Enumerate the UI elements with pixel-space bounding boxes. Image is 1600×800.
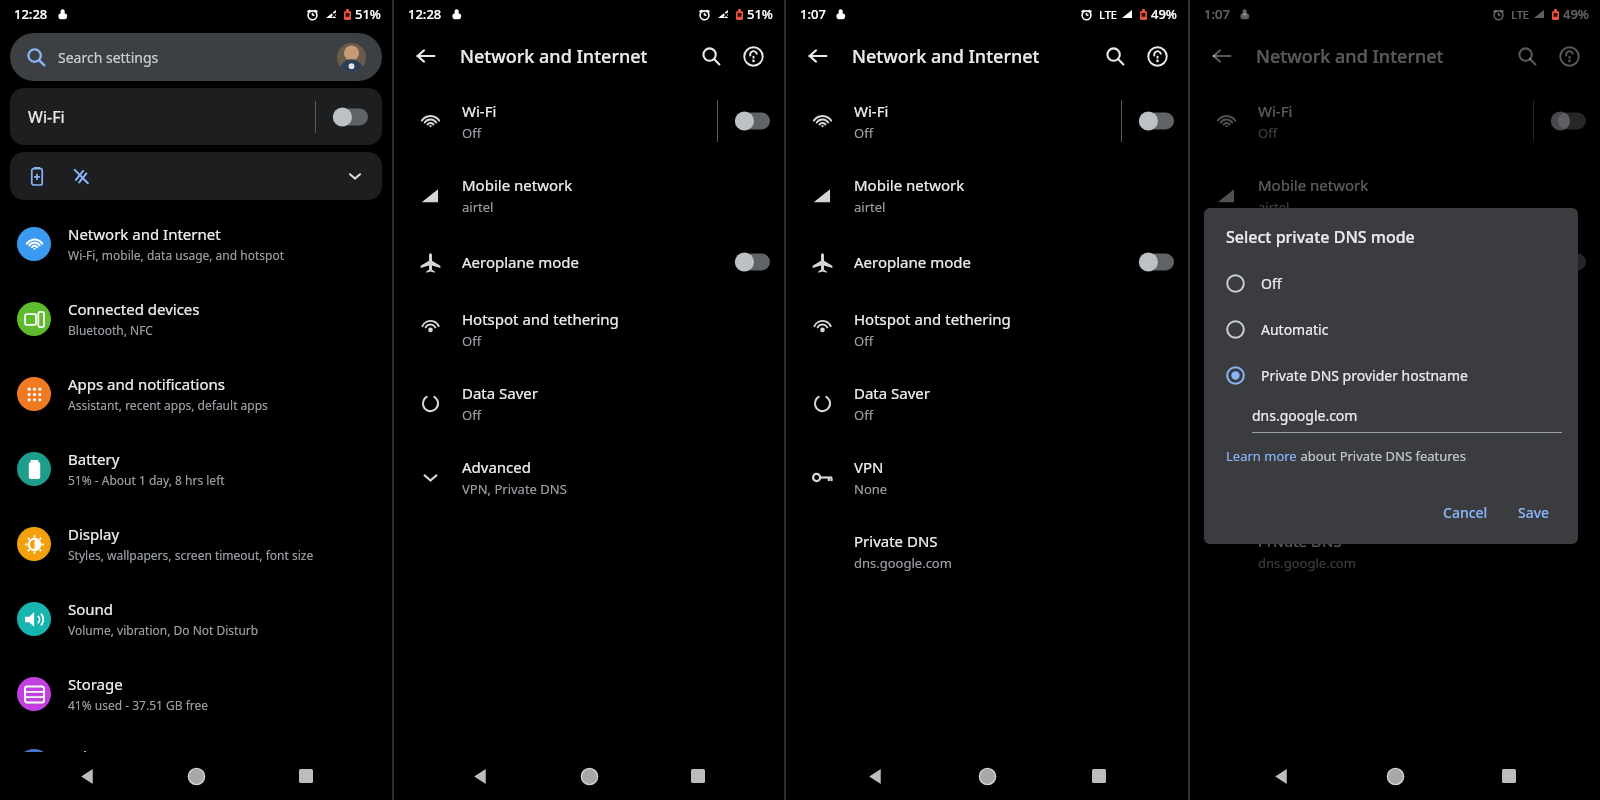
button[interactable]: Back	[457, 753, 503, 799]
button[interactable]: Search settings	[10, 33, 382, 81]
button[interactable]: Recents	[1486, 753, 1532, 799]
button[interactable]: Mobile network	[786, 158, 1188, 232]
button[interactable]: Help	[1136, 35, 1178, 77]
staticText: airtel	[1258, 198, 1290, 216]
button[interactable]: Recents	[283, 753, 329, 799]
button[interactable]: VPN	[786, 440, 1188, 514]
button[interactable]: Wi-Fi	[10, 88, 382, 145]
staticText: 12:28	[14, 5, 48, 23]
button[interactable]: Learn more	[1226, 447, 1466, 465]
button[interactable]: Private DNS	[1190, 514, 1600, 588]
button[interactable]: Battery	[0, 431, 392, 506]
button[interactable]: Help	[732, 35, 774, 77]
button[interactable]: Back	[1200, 34, 1244, 78]
button[interactable]: Connected devices	[0, 281, 392, 356]
staticText: Off	[854, 124, 874, 142]
staticText: Aeroplane mode	[854, 252, 971, 272]
button[interactable]: Toggle	[1138, 252, 1174, 272]
staticText: Private DNS provider hostname	[1261, 366, 1468, 385]
staticText: Data Saver	[462, 383, 539, 403]
button[interactable]: Wi-Fi	[786, 84, 1188, 158]
button[interactable]: Back	[64, 753, 110, 799]
button[interactable]: Home	[1372, 753, 1418, 799]
button[interactable]: Save	[1506, 495, 1562, 530]
button[interactable]: Back	[852, 753, 898, 799]
button[interactable]: Search	[1506, 35, 1548, 77]
button[interactable]: Wi-Fi	[1190, 84, 1600, 158]
staticText: Off	[462, 124, 482, 142]
staticText: Private DNS	[854, 531, 938, 551]
button[interactable]: Privacy	[0, 731, 392, 800]
staticText: LTE	[1511, 7, 1529, 22]
button[interactable]: Aeroplane mode	[1190, 232, 1600, 292]
button[interactable]: Mobile network	[394, 158, 784, 232]
staticText: Styles, wallpapers, screen timeout, font…	[68, 547, 314, 563]
button[interactable]: Toggle	[734, 252, 770, 272]
staticText: Learn more	[1226, 447, 1297, 465]
staticText: VPN	[1258, 457, 1288, 477]
staticText: Network and Internet	[852, 44, 1094, 69]
staticText: Display	[68, 524, 120, 544]
staticText: Hotspot and tethering	[854, 309, 1011, 329]
staticText: dns.google.com	[854, 554, 952, 572]
staticText: Wi-Fi	[462, 101, 497, 121]
button[interactable]: Apps and notifications	[0, 356, 392, 431]
button[interactable]: Search	[1094, 35, 1136, 77]
button[interactable]: Sound	[0, 581, 392, 656]
button[interactable]: Data Saver	[394, 366, 784, 440]
button[interactable]: Cancel	[1431, 495, 1500, 530]
button[interactable]: Home	[964, 753, 1010, 799]
staticText: Volume, vibration, Do Not Disturb	[68, 622, 259, 638]
button[interactable]: VPN	[1190, 440, 1600, 514]
button[interactable]: Recents	[675, 753, 721, 799]
staticText: dns.google.com	[1252, 406, 1358, 425]
button[interactable]: Advanced	[394, 440, 784, 514]
button[interactable]: Home	[173, 753, 219, 799]
staticText: dns.google.com	[1258, 554, 1356, 572]
button[interactable]: Storage	[0, 656, 392, 731]
button[interactable]: Aeroplane mode	[394, 232, 784, 292]
button[interactable]: Display	[0, 506, 392, 581]
button[interactable]: Data Saver	[1190, 366, 1600, 440]
button[interactable]: Data Saver	[786, 366, 1188, 440]
button[interactable]: Mobile network	[1190, 158, 1600, 232]
staticText: about Private DNS features	[1297, 447, 1466, 465]
staticText: airtel	[854, 198, 886, 216]
staticText: Battery	[68, 449, 120, 469]
button[interactable]	[10, 152, 382, 200]
button[interactable]: Private DNS	[786, 514, 1188, 588]
button[interactable]: Automatic	[1204, 306, 1578, 352]
button[interactable]: Hotspot and tethering	[1190, 292, 1600, 366]
button[interactable]: Back	[404, 34, 448, 78]
staticText: Off	[462, 406, 482, 424]
button[interactable]: Toggle	[1550, 111, 1586, 131]
staticText: 51%	[747, 5, 773, 23]
button[interactable]: Toggle	[734, 111, 770, 131]
staticText: Apps and notifications	[68, 374, 226, 394]
staticText: 51%	[355, 5, 381, 23]
button[interactable]: Private DNS provider hostname	[1204, 352, 1578, 398]
staticText: Data Saver	[854, 383, 931, 403]
staticText: Off	[1258, 406, 1278, 424]
staticText: Storage	[68, 674, 123, 694]
button[interactable]: Hotspot and tethering	[394, 292, 784, 366]
button[interactable]: Search	[690, 35, 732, 77]
button[interactable]: Toggle	[1138, 111, 1174, 131]
button[interactable]: Off	[1204, 260, 1578, 306]
button[interactable]: Hotspot and tethering	[786, 292, 1188, 366]
button[interactable]: Toggle	[332, 107, 368, 127]
staticText: 49%	[1151, 5, 1177, 23]
button[interactable]: Network and Internet	[0, 206, 392, 281]
button[interactable]: Home	[566, 753, 612, 799]
button[interactable]: Recents	[1076, 753, 1122, 799]
staticText: Off	[1258, 332, 1278, 350]
staticText: Bluetooth, NFC	[68, 322, 153, 338]
button[interactable]: Back	[1258, 753, 1304, 799]
button[interactable]: Wi-Fi	[394, 84, 784, 158]
button[interactable]: Help	[1548, 35, 1590, 77]
button[interactable]: Back	[796, 34, 840, 78]
staticText: Wi-Fi	[854, 101, 889, 121]
button[interactable]: Toggle	[1550, 252, 1586, 272]
button[interactable]: Aeroplane mode	[786, 232, 1188, 292]
